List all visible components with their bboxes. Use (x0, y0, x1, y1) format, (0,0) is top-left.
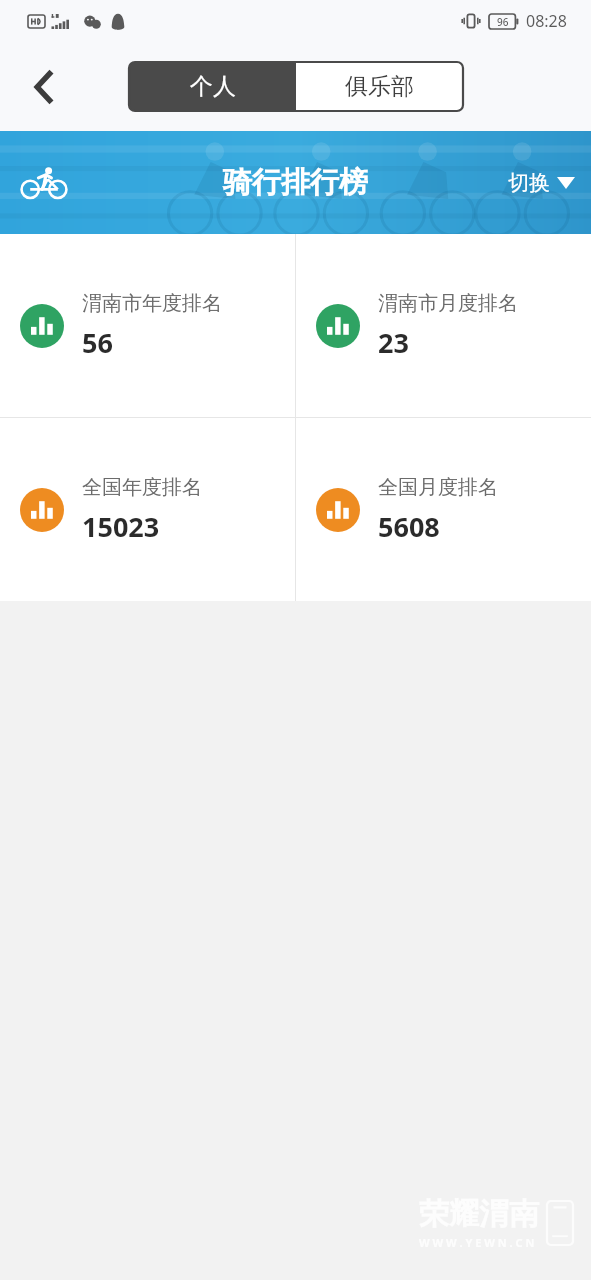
staticText: 08:28 (526, 10, 567, 32)
button[interactable]: Back (16, 59, 72, 115)
button[interactable]: 个人 (129, 62, 296, 111)
button[interactable]: 全国年度排名 (0, 418, 295, 601)
staticText: 56 (82, 324, 113, 361)
staticText: 15023 (82, 508, 160, 545)
staticText: 个人 (190, 72, 236, 101)
staticText: 切换 (508, 170, 550, 196)
staticText: 96 (497, 15, 509, 29)
staticText: 全国月度排名 (378, 475, 498, 500)
staticText: 渭南市月度排名 (378, 291, 518, 316)
staticText: 渭南市年度排名 (82, 291, 222, 316)
staticText: 23 (378, 324, 409, 361)
button[interactable]: 全国月度排名 (296, 418, 591, 601)
staticText: 骑行排行榜 (223, 164, 368, 201)
button[interactable]: 渭南市年度排名 (0, 234, 295, 417)
staticText: 5608 (378, 508, 440, 545)
staticText: 荣耀渭南 (419, 1195, 539, 1233)
staticText: 全国年度排名 (82, 475, 202, 500)
staticText: W W W . Y E W N . C N (419, 1235, 535, 1250)
button[interactable]: 切换 (508, 170, 575, 196)
button[interactable]: 俱乐部 (296, 62, 463, 111)
button[interactable]: 渭南市月度排名 (296, 234, 591, 417)
staticText: 俱乐部 (345, 72, 414, 101)
